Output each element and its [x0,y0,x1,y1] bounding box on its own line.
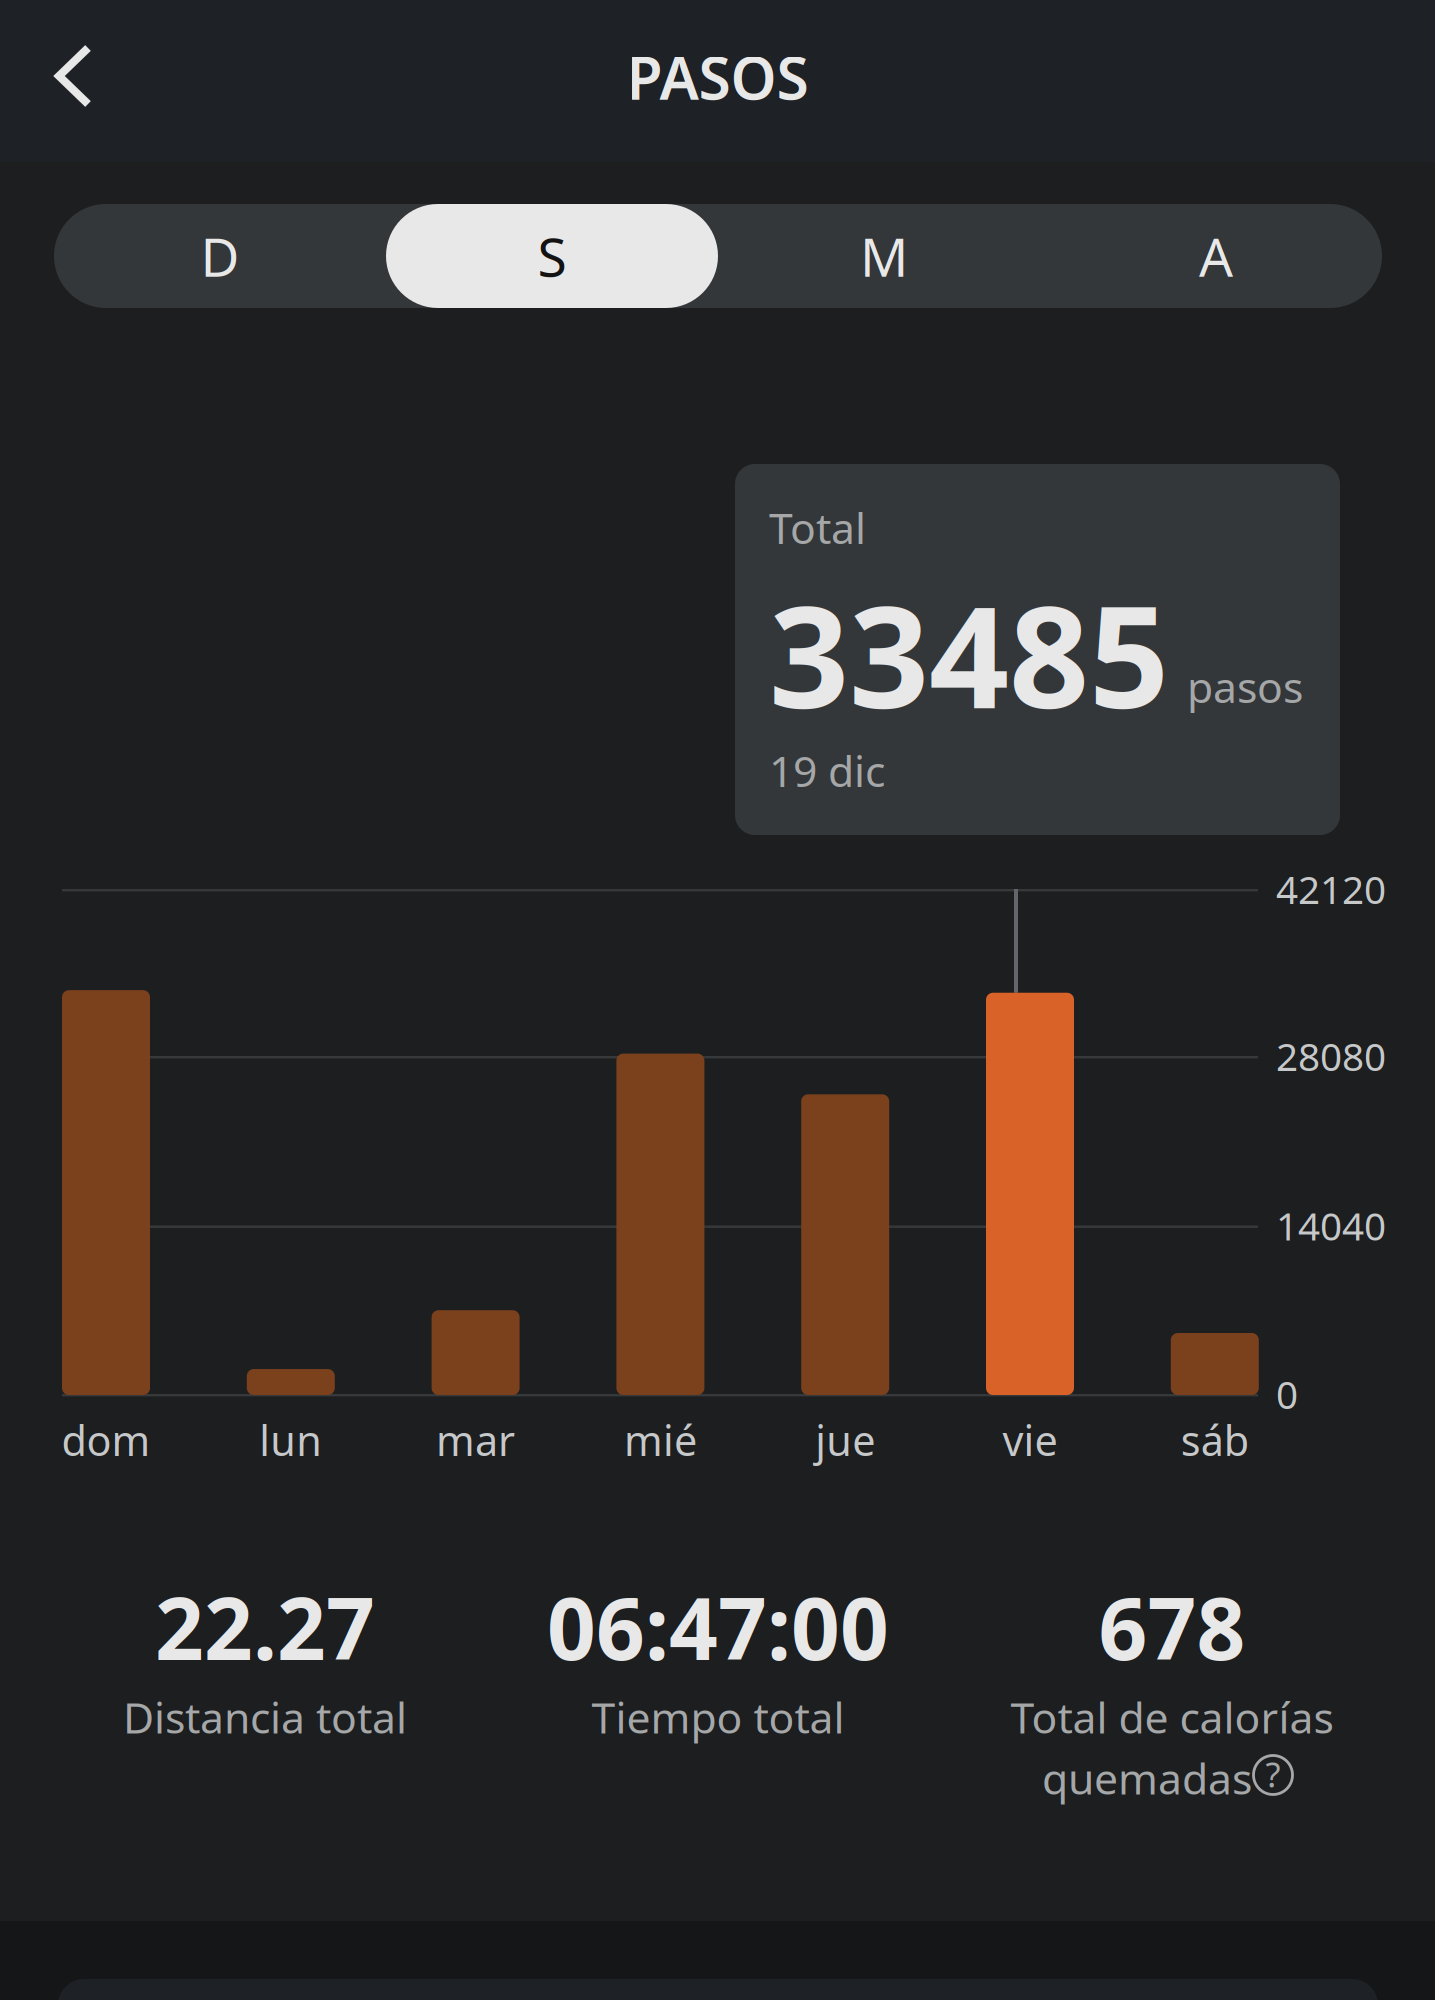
staticText: Total [769,499,866,556]
staticText: D [200,221,239,291]
staticText: 33485 [769,561,1169,747]
staticText: Total de calorías [1010,1689,1333,1745]
staticText: 14040 [1276,1200,1386,1251]
button[interactable]: A [1050,204,1382,308]
staticText: ? [1265,1751,1280,1797]
staticText: Tiempo total [591,1689,844,1745]
button[interactable]: Más información sobre calorías [1252,1757,1294,1799]
staticText: 28080 [1276,1030,1386,1082]
staticText: 678 [1098,1570,1245,1684]
button[interactable]: S [386,204,718,308]
staticText: 22.27 [155,1570,375,1684]
staticText: mar [436,1413,515,1467]
staticText: S [537,221,566,291]
staticText: 42120 [1276,863,1386,915]
staticText: PASOS [626,38,808,116]
staticText: 06:47:00 [547,1570,889,1684]
button[interactable]: M [718,204,1050,308]
staticText: mié [624,1413,697,1467]
staticText: 19 dic [769,742,885,799]
button[interactable]: D [54,204,386,308]
staticText: A [1199,221,1233,291]
staticText: lun [259,1413,322,1467]
staticText: jue [815,1413,875,1467]
staticText: M [860,221,908,291]
staticText: dom [61,1413,150,1467]
staticText: sáb [1181,1413,1249,1467]
staticText: Distancia total [123,1689,407,1745]
staticText: pasos [1187,658,1303,715]
staticText: quemadas [1042,1750,1252,1806]
button[interactable]: Atrás [0,0,150,152]
staticText: vie [1002,1413,1057,1467]
staticText: 0 [1276,1368,1298,1420]
